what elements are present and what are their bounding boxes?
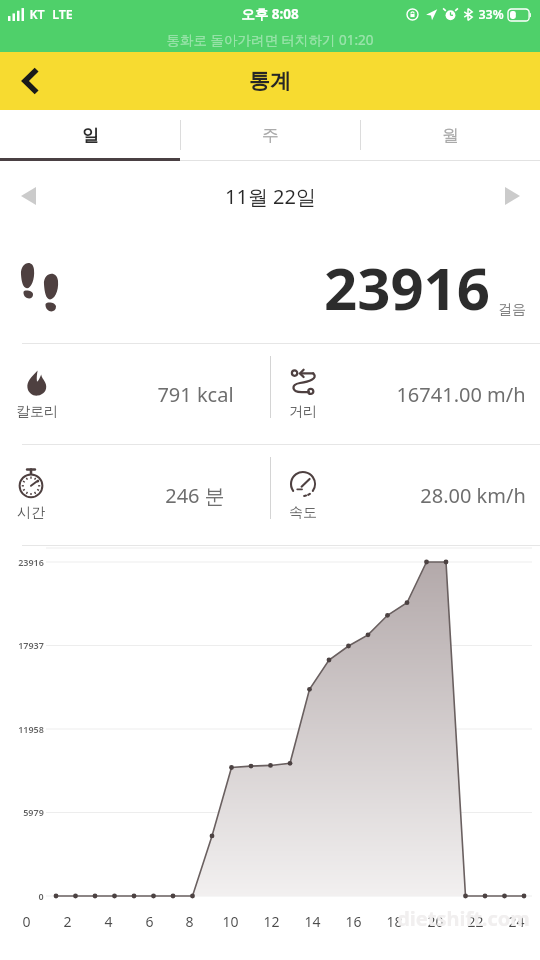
staticText: 18 [386,912,403,931]
staticText: 16741.00 m/h [396,381,526,408]
button[interactable]: 일 [0,110,180,160]
staticText: dietshift.com [397,905,530,932]
staticText: 14 [304,912,321,931]
staticText: 12 [263,912,280,931]
staticText: 11958 [18,723,44,735]
staticText: 24 [508,912,525,931]
staticText: 6 [145,912,154,931]
staticText: 20 [427,912,444,931]
staticText: 속도 [289,504,317,522]
staticText: 주 [262,125,279,146]
staticText: 17937 [18,639,44,651]
staticText: 23916 [324,248,490,327]
button[interactable]: 월 [361,110,540,160]
staticText: 23916 [18,556,44,568]
button[interactable]: 거리 [270,344,540,444]
staticText: 통화로 돌아가려면 터치하기 01:20 [166,31,374,49]
staticText: 10 [222,912,239,931]
staticText: 11월 22일 [225,183,316,210]
staticText: 시간 [17,504,45,522]
staticText: 5979 [23,806,44,818]
button[interactable]: Back [0,52,62,110]
staticText: 0 [22,912,31,931]
staticText: 8 [185,912,194,931]
staticText: 33% [478,6,504,23]
staticText: KT [29,6,45,23]
staticText: LTE [52,6,73,23]
button[interactable]: 칼로리 [0,344,270,444]
staticText: 791 kcal [157,381,234,408]
staticText: 28.00 km/h [420,482,526,509]
staticText: 월 [442,125,459,146]
staticText: 2 [63,912,72,931]
staticText: 오후 8:08 [241,5,299,23]
button[interactable]: Next day [484,168,540,224]
staticText: 걸음 [498,301,526,319]
button[interactable]: 주 [181,110,360,160]
button[interactable]: 통화로 돌아가려면 터치하기 01:20 [0,28,540,52]
staticText: 칼로리 [16,403,58,421]
staticText: 22 [467,912,484,931]
staticText: 일 [82,125,99,146]
button[interactable]: 시간 [0,445,270,545]
staticText: 통계 [249,68,291,94]
staticText: 246 분 [165,482,225,509]
button[interactable]: 속도 [270,445,540,545]
button[interactable]: Previous day [0,168,56,224]
staticText: 거리 [289,403,317,421]
staticText: 16 [345,912,362,931]
staticText: 4 [104,912,113,931]
staticText: 0 [38,890,44,902]
